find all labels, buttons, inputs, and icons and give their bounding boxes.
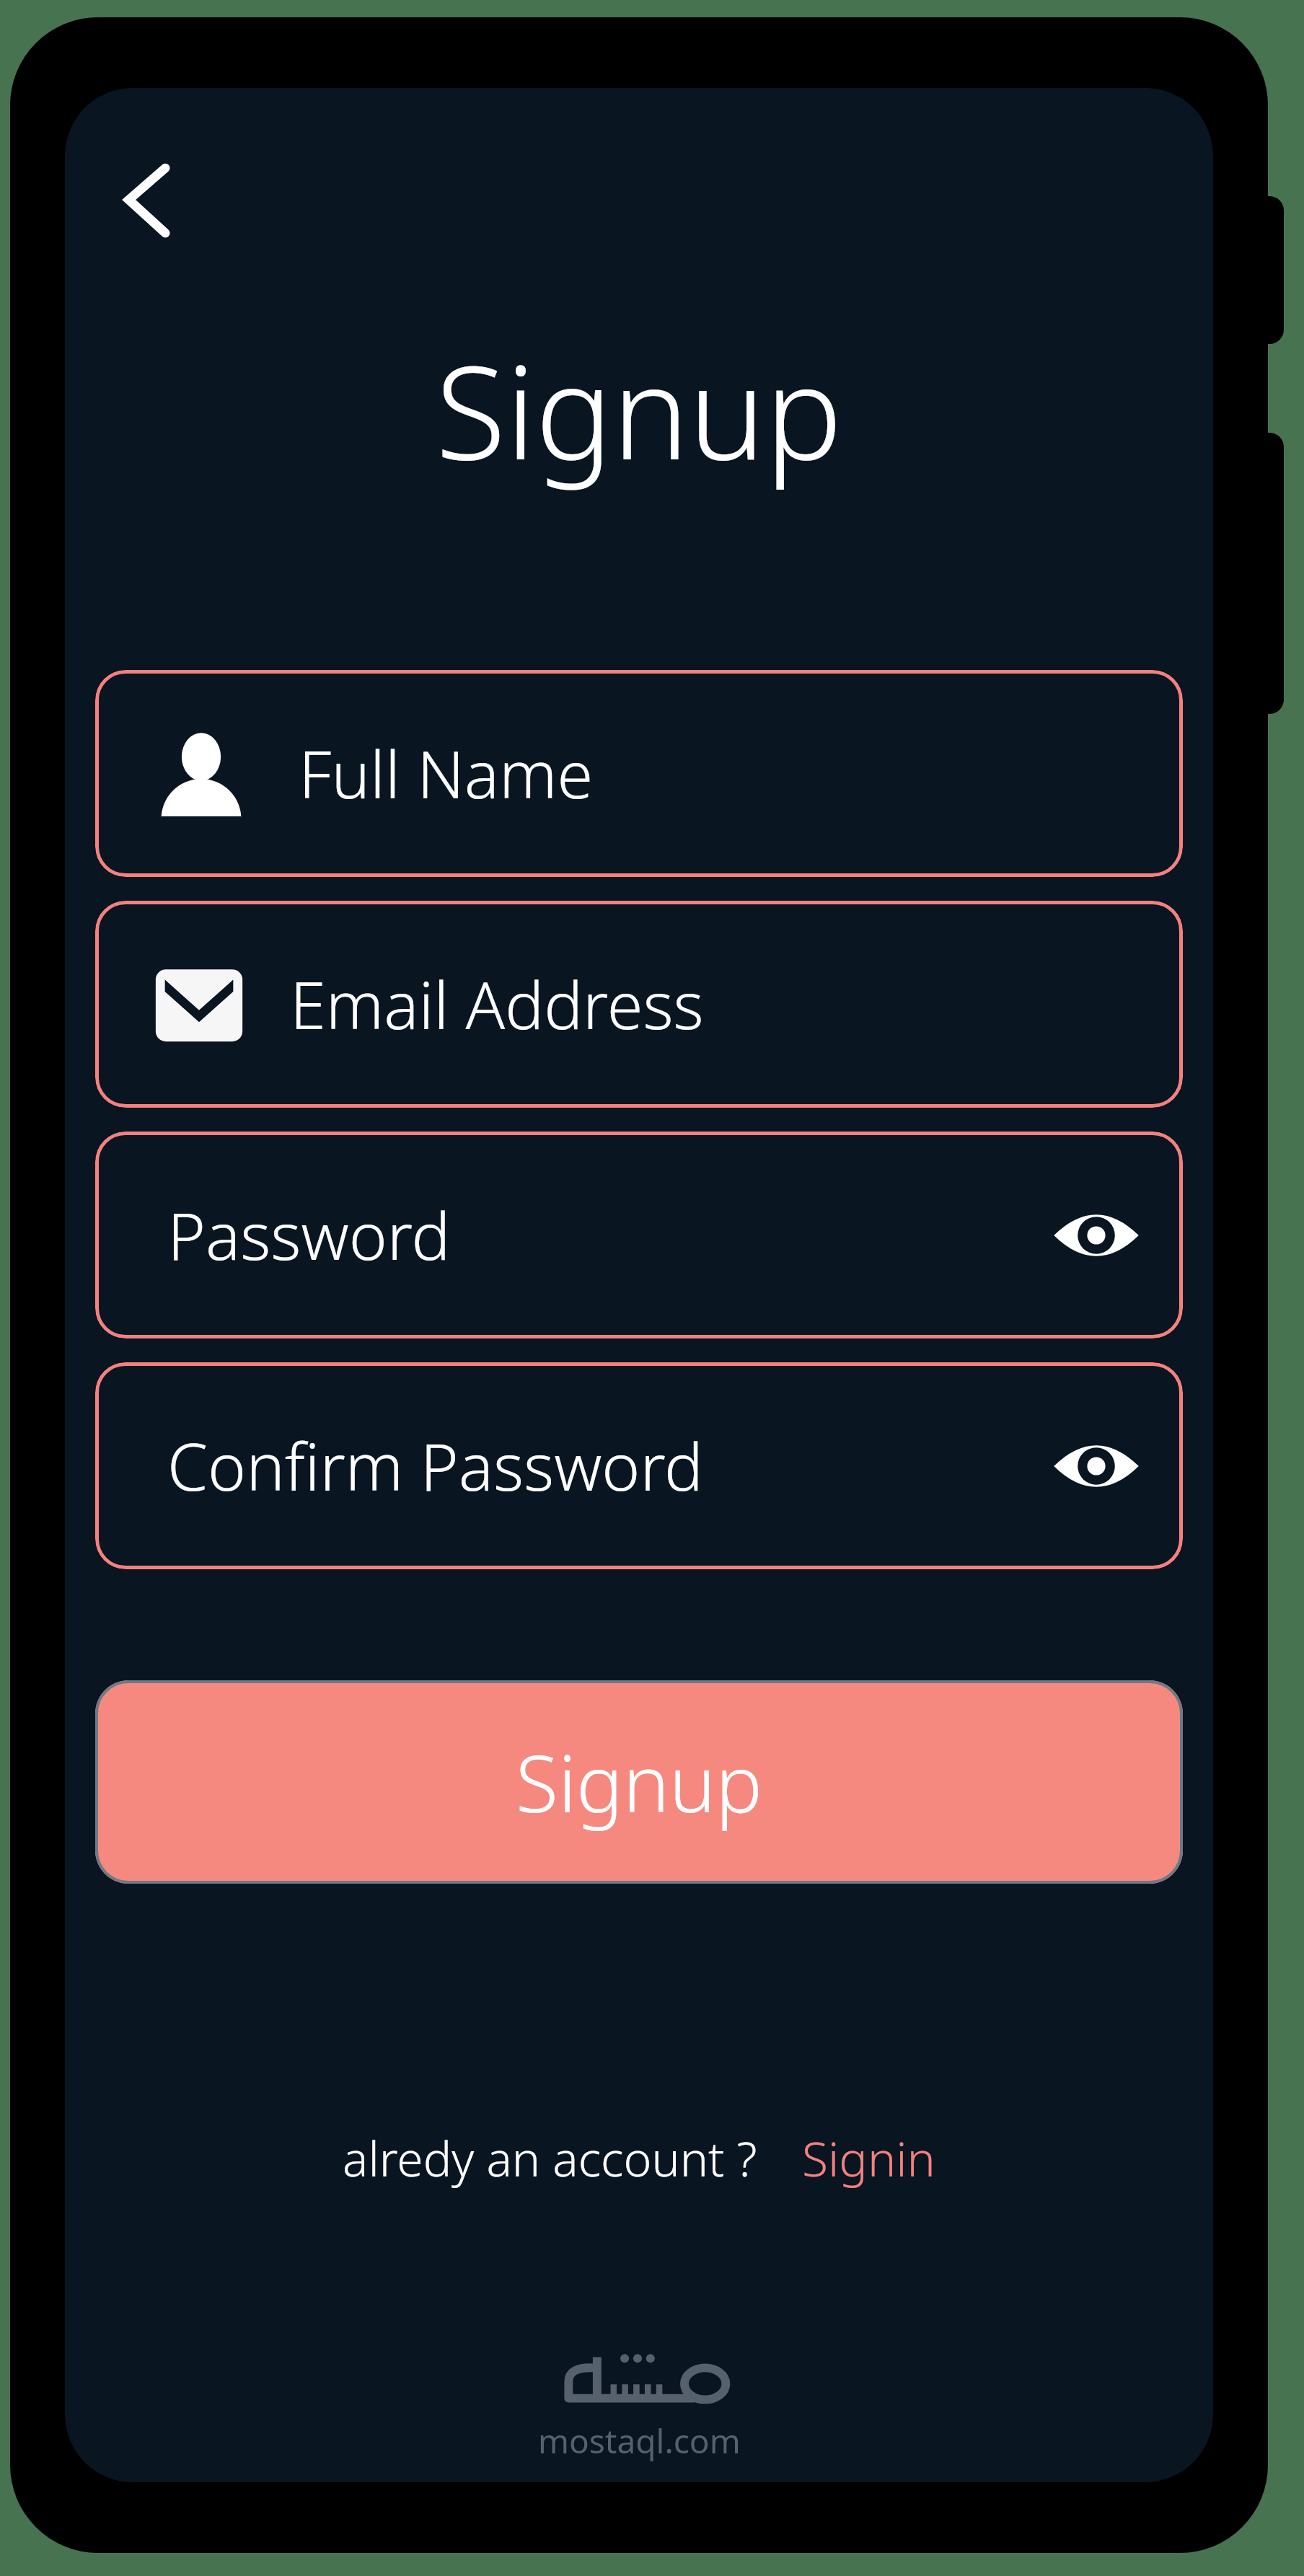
button[interactable]: Full Name: [95, 670, 1183, 877]
staticText: alredy an account ?: [343, 2125, 757, 2190]
button[interactable]: Password: [95, 1132, 1183, 1338]
staticText: mostaql.com: [538, 2418, 741, 2463]
staticText: Confirm Password: [167, 1421, 703, 1510]
button[interactable]: Show password: [1031, 1401, 1161, 1531]
staticText: Password: [167, 1191, 451, 1279]
button[interactable]: Signup: [95, 1680, 1183, 1884]
staticText: Full Name: [299, 729, 594, 818]
button[interactable]: Signin: [802, 2125, 935, 2190]
button[interactable]: Show password: [1031, 1170, 1161, 1300]
button[interactable]: Email Address: [95, 901, 1183, 1108]
staticText: Signin: [802, 2125, 935, 2190]
staticText: Email Address: [290, 960, 704, 1049]
button[interactable]: Back: [79, 131, 216, 268]
button[interactable]: Confirm Password: [95, 1362, 1183, 1569]
staticText: Signup: [436, 322, 842, 497]
staticText: Signup: [516, 1729, 762, 1835]
